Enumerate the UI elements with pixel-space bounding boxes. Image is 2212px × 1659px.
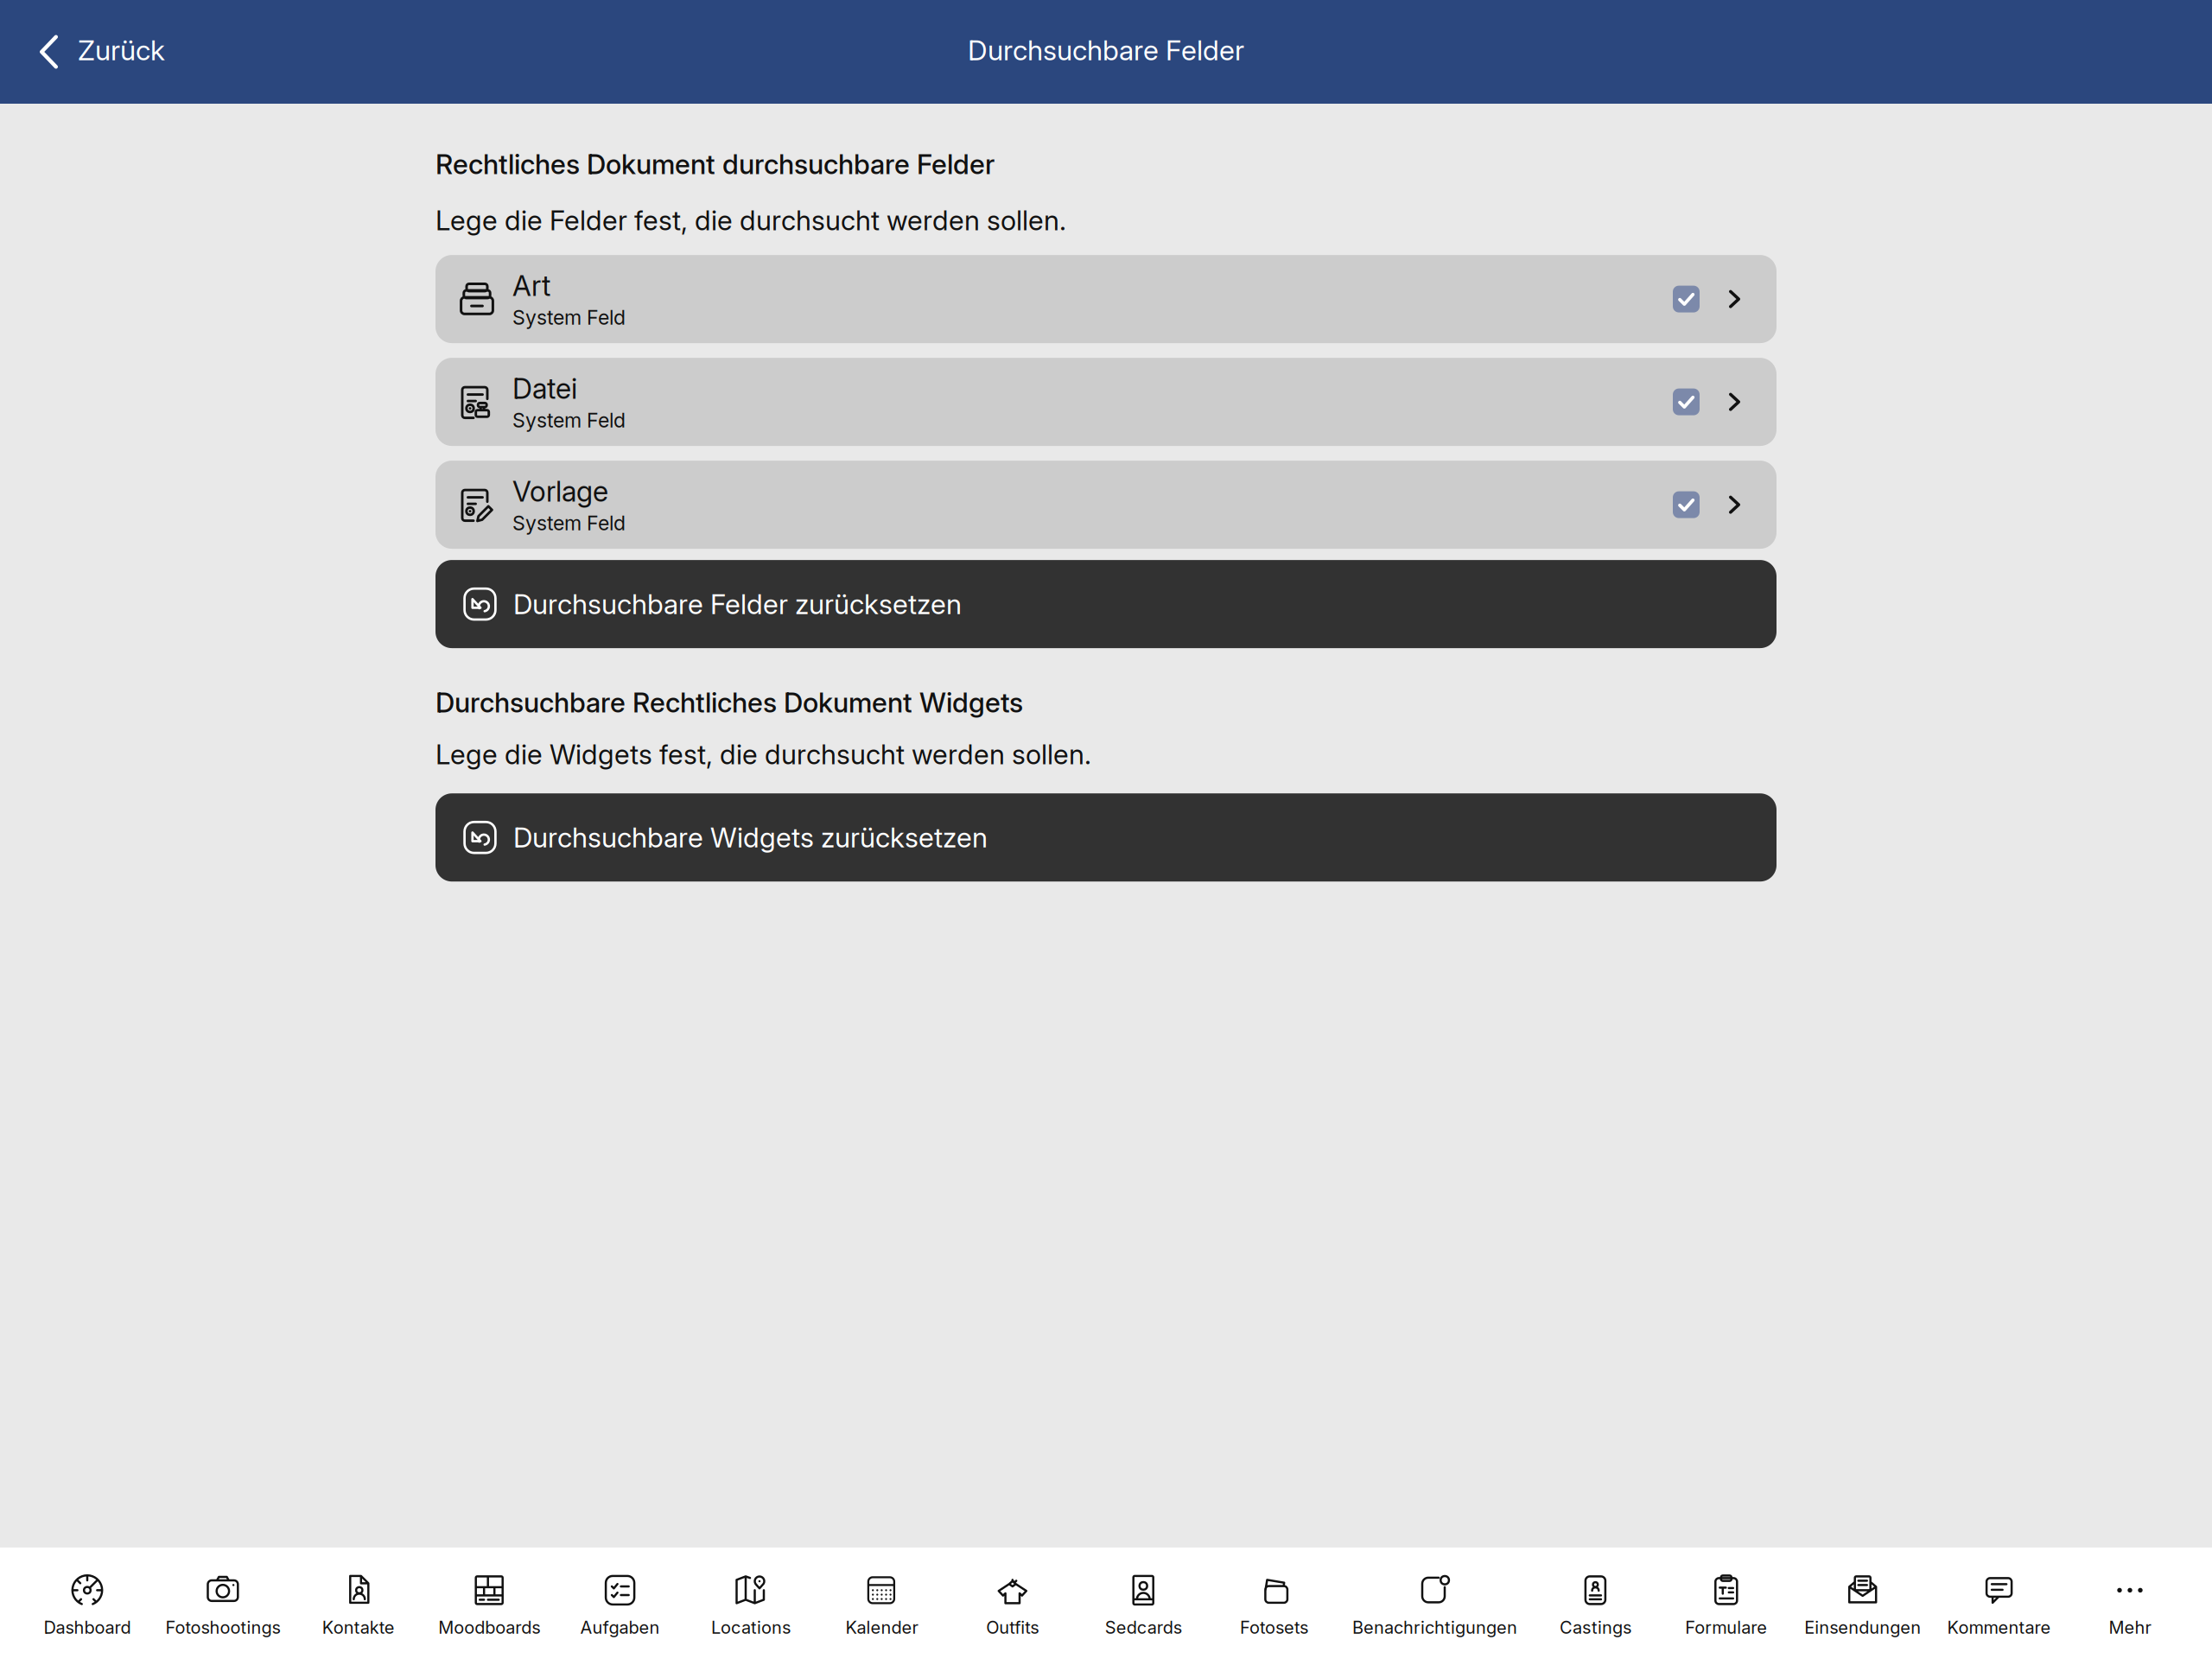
staticText: Vorlage <box>512 474 608 508</box>
staticText: Sedcards <box>1105 1617 1182 1638</box>
staticText: Art <box>512 269 550 303</box>
staticText: Formulare <box>1685 1617 1767 1638</box>
button[interactable]: Mehr <box>2077 1546 2183 1659</box>
staticText: Kommentare <box>1947 1617 2051 1638</box>
button[interactable]: Zurück <box>0 0 186 104</box>
staticText: Fotoshootings <box>165 1617 280 1638</box>
button[interactable]: Fotoshootings <box>165 1546 280 1659</box>
button[interactable]: Einsendungen <box>1804 1546 1921 1659</box>
staticText: Lege die Felder fest, die durchsucht wer… <box>435 204 1066 237</box>
staticText: Datei <box>512 371 577 405</box>
staticText: Durchsuchbare Felder zurücksetzen <box>513 587 962 621</box>
staticText: Aufgaben <box>580 1617 660 1638</box>
staticText: System Feld <box>512 511 626 535</box>
staticText: Dashboard <box>44 1617 131 1638</box>
button[interactable]: Durchsuchbare Felder zurücksetzen <box>435 560 1777 648</box>
button[interactable]: Aufgaben <box>567 1546 673 1659</box>
button[interactable]: Kommentare <box>1946 1546 2052 1659</box>
staticText: Kalender <box>845 1617 918 1638</box>
button[interactable]: Moodboards <box>437 1546 542 1659</box>
staticText: Durchsuchbare Widgets zurücksetzen <box>513 821 988 854</box>
button[interactable]: Fotosets <box>1221 1546 1327 1659</box>
staticText: Durchsuchbare Felder <box>968 33 1244 67</box>
staticText: Lege die Widgets fest, die durchsucht we… <box>435 738 1091 771</box>
staticText: Rechtliches Dokument durchsuchbare Felde… <box>435 148 995 181</box>
button[interactable]: Locations <box>698 1546 804 1659</box>
button[interactable]: Benachrichtigungen <box>1352 1546 1517 1659</box>
staticText: Durchsuchbare Rechtliches Dokument Widge… <box>435 686 1023 719</box>
staticText: Moodboards <box>438 1617 540 1638</box>
staticText: Mehr <box>2109 1617 2151 1638</box>
staticText: Kontakte <box>322 1617 395 1638</box>
button[interactable]: Kontakte <box>306 1546 411 1659</box>
button[interactable]: Formulare <box>1674 1546 1779 1659</box>
button[interactable]: Kalender <box>829 1546 934 1659</box>
button[interactable]: Castings <box>1543 1546 1648 1659</box>
button[interactable]: Outfits <box>960 1546 1065 1659</box>
staticText: Fotosets <box>1240 1617 1308 1638</box>
button[interactable]: Datei <box>435 358 1777 446</box>
button[interactable]: Durchsuchbare Widgets zurücksetzen <box>435 793 1777 882</box>
button[interactable]: Vorlage <box>435 461 1777 549</box>
staticText: System Feld <box>512 408 626 432</box>
staticText: Locations <box>711 1617 791 1638</box>
staticText: Benachrichtigungen <box>1352 1617 1517 1638</box>
staticText: Castings <box>1560 1617 1631 1638</box>
button[interactable]: Dashboard <box>35 1546 140 1659</box>
staticText: Outfits <box>986 1617 1039 1638</box>
staticText: System Feld <box>512 305 626 329</box>
staticText: Zurück <box>78 33 165 67</box>
button[interactable]: Art <box>435 255 1777 343</box>
staticText: Einsendungen <box>1804 1617 1921 1638</box>
button[interactable]: Sedcards <box>1091 1546 1196 1659</box>
